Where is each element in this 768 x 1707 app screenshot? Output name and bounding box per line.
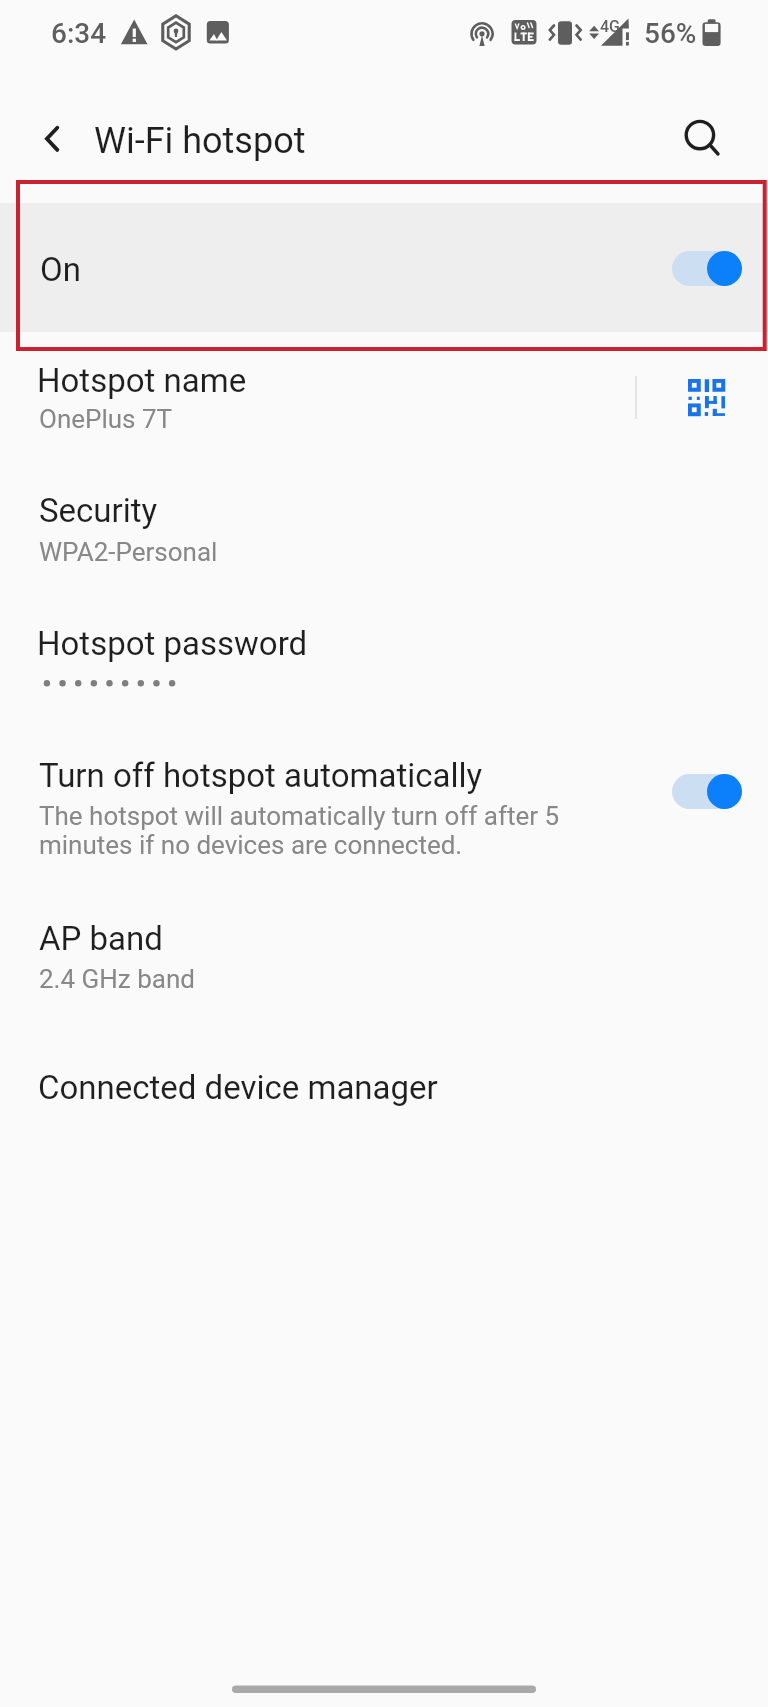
button[interactable]: Share hotspot QR code <box>688 379 727 418</box>
button[interactable]: Hotspot name <box>0 352 768 460</box>
button[interactable]: AP band <box>0 908 768 1008</box>
staticText: 6:34 <box>51 17 107 50</box>
staticText: Wi-Fi hotspot <box>94 120 306 162</box>
staticText: AP band <box>39 919 163 958</box>
button[interactable]: Turn off hotspot automatically <box>0 742 768 882</box>
button[interactable]: Hotspot password <box>0 612 768 712</box>
staticText: WPA2-Personal <box>39 537 218 567</box>
staticText: Turn off hotspot automatically <box>39 756 483 795</box>
staticText: On <box>40 250 81 289</box>
staticText: 56% <box>644 17 697 50</box>
staticText: Connected device manager <box>38 1068 438 1107</box>
button[interactable]: Connected device manager <box>0 1053 768 1125</box>
staticText: OnePlus 7T <box>39 404 173 434</box>
staticText: 4G <box>600 17 620 36</box>
button[interactable]: On <box>0 203 768 332</box>
staticText: Hotspot password <box>37 624 308 663</box>
staticText: Hotspot name <box>37 361 247 400</box>
button[interactable]: Toggle hotspot <box>672 251 742 286</box>
staticText: 2.4 GHz band <box>39 964 195 994</box>
button[interactable]: Security <box>0 482 768 582</box>
button[interactable]: Search <box>676 111 724 159</box>
staticText: Security <box>39 491 158 530</box>
staticText: The hotspot will automatically turn off … <box>39 801 579 861</box>
button[interactable]: Toggle hotspot <box>672 774 742 809</box>
button[interactable]: Back <box>28 111 76 159</box>
